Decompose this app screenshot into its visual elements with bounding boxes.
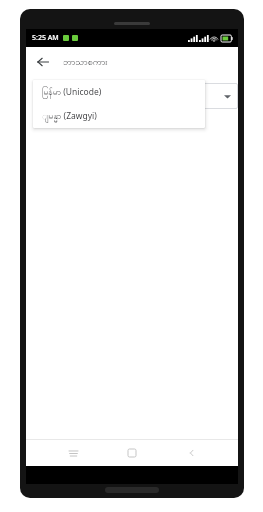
staticText: ဘာသာစကား — [63, 56, 108, 69]
button[interactable]: Recent apps — [60, 440, 86, 466]
button[interactable]: Back — [179, 440, 205, 466]
staticText: ျမန္မာ (Zawgyi) — [42, 110, 97, 123]
staticText: 5:25 AM — [32, 33, 59, 43]
button[interactable]: မြန်မာ (Unicode) — [33, 80, 205, 104]
button[interactable]: Home — [119, 440, 145, 466]
button[interactable]: ျမန္မာ (Zawgyi) — [33, 104, 205, 128]
button[interactable]: Open language list — [36, 83, 238, 109]
other: Open language list — [224, 93, 231, 100]
staticText: မြန်မာ (Unicode) — [42, 86, 102, 99]
button[interactable]: Back — [31, 50, 55, 74]
